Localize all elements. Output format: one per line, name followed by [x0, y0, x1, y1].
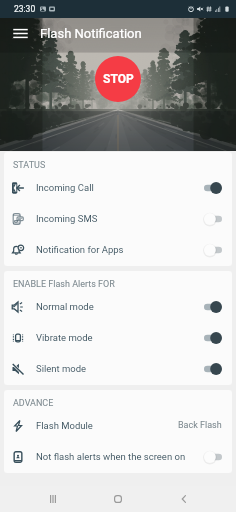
staticText: STOP: [103, 72, 134, 86]
staticText: ENABLE Flash Alerts FOR: [13, 279, 115, 290]
staticText: Incoming SMS: [36, 213, 98, 224]
staticText: Flash Notification: [40, 26, 142, 41]
staticText: ADVANCE: [13, 398, 54, 409]
button[interactable]: STOP: [95, 56, 141, 102]
staticText: Back Flash: [178, 420, 222, 431]
button[interactable]: Incoming SMS: [4, 203, 232, 234]
button[interactable]: Back: [171, 486, 197, 512]
button[interactable]: Incoming Call: [4, 172, 232, 203]
button[interactable]: Normal mode: [4, 291, 232, 322]
staticText: Incoming Call: [36, 182, 94, 193]
staticText: Normal mode: [36, 301, 94, 312]
staticText: Flash Module: [36, 420, 93, 431]
staticText: 23:30: [14, 4, 36, 14]
button[interactable]: Flash Module: [4, 410, 232, 441]
button[interactable]: Vibrate mode: [4, 322, 232, 353]
staticText: Not flash alerts when the screen on: [36, 451, 186, 462]
staticText: Vibrate mode: [36, 332, 93, 343]
button[interactable]: Not flash alerts when the screen on: [4, 441, 232, 472]
staticText: Notification for Apps: [36, 244, 124, 255]
button[interactable]: Home: [105, 486, 131, 512]
staticText: Silent mode: [36, 363, 87, 374]
button[interactable]: Open navigation menu: [8, 21, 32, 45]
button[interactable]: Silent mode: [4, 353, 232, 384]
button[interactable]: Recent apps: [40, 486, 66, 512]
button[interactable]: Notification for Apps: [4, 234, 232, 265]
staticText: STATUS: [13, 160, 46, 171]
